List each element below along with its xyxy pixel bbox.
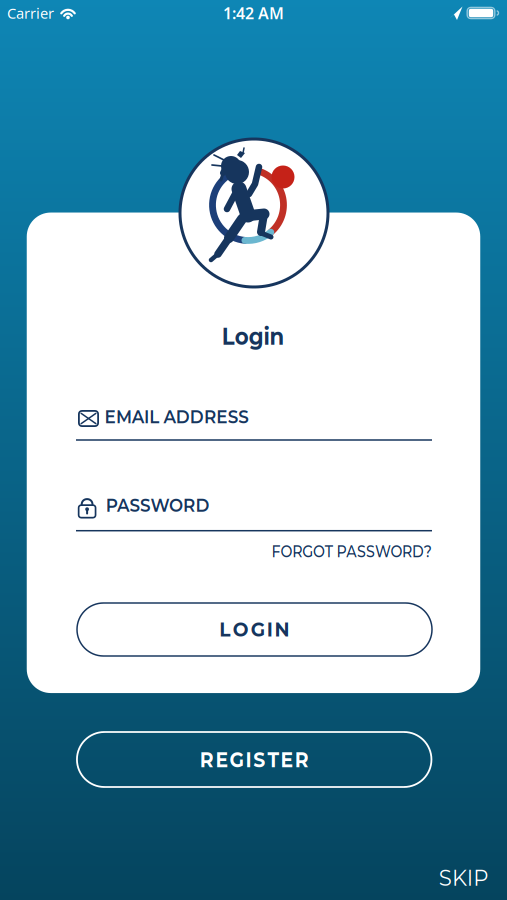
button[interactable]: R E G I S T E R (77, 732, 431, 787)
button[interactable]: EMAIL ADDRESS (76, 402, 432, 448)
staticText: 1:42 AM (223, 2, 284, 24)
staticText: FORGOT PASSWORD? (263, 542, 441, 561)
staticText: L O G I N (217, 618, 291, 641)
button[interactable]: SKIP (437, 864, 490, 891)
staticText: Carrier (7, 3, 54, 23)
staticText: PASSWORD (99, 493, 217, 517)
staticText: Login (217, 321, 289, 351)
button[interactable]: FORGOT PASSWORD? (263, 542, 441, 561)
staticText: EMAIL ADDRESS (95, 405, 259, 428)
staticText: SKIP (437, 864, 490, 891)
button[interactable]: PASSWORD (76, 491, 432, 537)
staticText: R E G I S T E R (192, 746, 316, 772)
button[interactable]: L O G I N (77, 603, 432, 656)
